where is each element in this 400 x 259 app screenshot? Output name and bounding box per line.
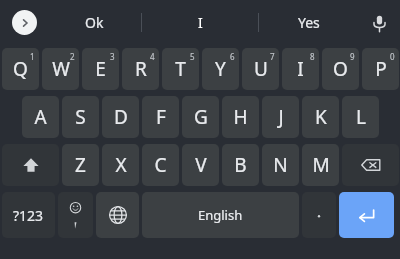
- staticText: C: [154, 152, 167, 178]
- button[interactable]: L: [342, 96, 379, 138]
- staticText: English: [198, 206, 243, 224]
- staticText: F: [156, 104, 166, 130]
- button[interactable]: T: [162, 48, 199, 90]
- staticText: T: [175, 56, 186, 82]
- staticText: U: [254, 56, 268, 82]
- button[interactable]: H: [222, 96, 259, 138]
- button[interactable]: B: [222, 144, 259, 186]
- button[interactable]: Y: [202, 48, 239, 90]
- staticText: 3: [110, 51, 115, 62]
- button[interactable]: Shift: [2, 144, 59, 186]
- button[interactable]: J: [262, 96, 299, 138]
- staticText: 5: [190, 51, 195, 62]
- button[interactable]: O: [322, 48, 359, 90]
- button[interactable]: Yes: [259, 0, 359, 45]
- staticText: B: [234, 152, 247, 178]
- staticText: Ok: [85, 13, 104, 32]
- button[interactable]: M: [302, 144, 339, 186]
- button[interactable]: Change keyboard language: [96, 192, 139, 238]
- button[interactable]: R: [122, 48, 159, 90]
- button[interactable]: P: [362, 48, 399, 90]
- staticText: M: [312, 152, 330, 178]
- staticText: L: [356, 104, 366, 130]
- button[interactable]: D: [102, 96, 139, 138]
- staticText: ?123: [13, 206, 44, 225]
- button[interactable]: G: [182, 96, 219, 138]
- button[interactable]: Z: [62, 144, 99, 186]
- staticText: R: [135, 56, 147, 82]
- staticText: P: [375, 56, 387, 82]
- button[interactable]: S: [62, 96, 99, 138]
- button[interactable]: N: [262, 144, 299, 186]
- button[interactable]: U: [242, 48, 279, 90]
- staticText: D: [114, 104, 128, 130]
- staticText: 2: [70, 51, 75, 62]
- button[interactable]: F: [142, 96, 179, 138]
- staticText: H: [233, 104, 248, 130]
- staticText: E: [95, 56, 106, 82]
- staticText: 9: [350, 51, 355, 62]
- button[interactable]: K: [302, 96, 339, 138]
- staticText: 6: [230, 51, 235, 62]
- button[interactable]: C: [142, 144, 179, 186]
- button[interactable]: Expand suggestions: [12, 10, 37, 35]
- staticText: Q: [13, 56, 28, 82]
- button[interactable]: Enter: [339, 192, 394, 238]
- staticText: K: [315, 104, 327, 130]
- staticText: X: [115, 152, 127, 178]
- staticText: 4: [150, 51, 155, 62]
- staticText: 7: [270, 51, 275, 62]
- staticText: Yes: [298, 13, 320, 32]
- button[interactable]: I: [142, 0, 258, 45]
- button[interactable]: Emoji and comma: [58, 192, 93, 238]
- staticText: V: [195, 152, 207, 178]
- staticText: 0: [390, 51, 395, 62]
- staticText: Z: [75, 152, 86, 178]
- staticText: I: [198, 13, 203, 32]
- staticText: J: [278, 104, 284, 130]
- button[interactable]: W: [42, 48, 79, 90]
- staticText: W: [52, 56, 70, 82]
- staticText: A: [34, 104, 47, 130]
- staticText: 8: [310, 51, 315, 62]
- staticText: S: [75, 104, 86, 130]
- button[interactable]: English: [142, 192, 299, 238]
- staticText: 1: [30, 51, 35, 62]
- button[interactable]: V: [182, 144, 219, 186]
- button[interactable]: Backspace: [342, 144, 399, 186]
- button[interactable]: X: [102, 144, 139, 186]
- button[interactable]: E: [82, 48, 119, 90]
- staticText: Y: [215, 56, 226, 82]
- staticText: O: [333, 56, 348, 82]
- staticText: G: [194, 104, 208, 130]
- staticText: I: [297, 56, 304, 82]
- button[interactable]: Q: [2, 48, 39, 90]
- button[interactable]: Period: [302, 192, 336, 238]
- button[interactable]: A: [22, 96, 59, 138]
- button[interactable]: Voice input: [364, 8, 394, 38]
- button[interactable]: Ok: [48, 0, 141, 45]
- button[interactable]: ?123: [2, 192, 55, 238]
- button[interactable]: I: [282, 48, 319, 90]
- staticText: N: [273, 152, 288, 178]
